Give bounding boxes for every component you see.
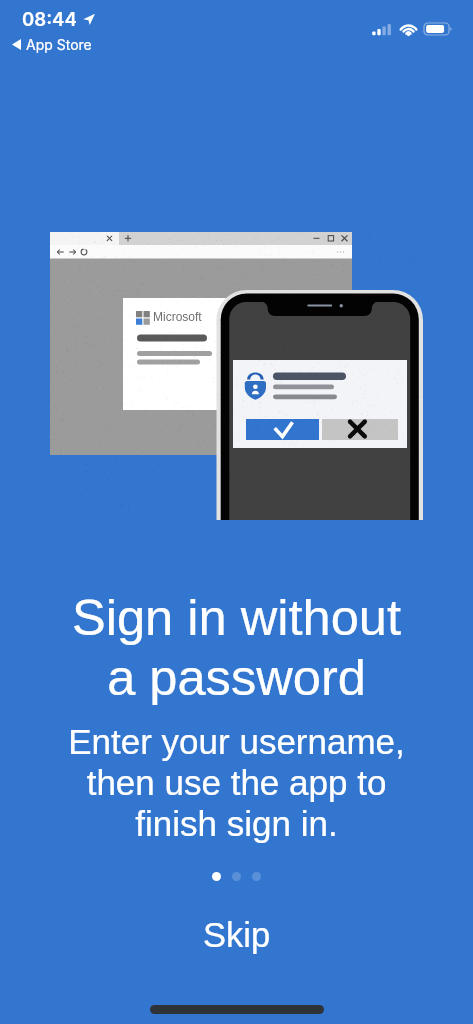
button[interactable]: Go to page 2: [232, 872, 241, 881]
staticText: Skip: [203, 916, 271, 955]
staticText: App Store: [26, 36, 92, 53]
staticText: Sign in without a password: [0, 589, 473, 705]
button[interactable]: Back to App Store: [12, 36, 96, 53]
staticText: Enter your username, then use the app to…: [0, 722, 473, 843]
staticText: 08:44: [22, 8, 77, 31]
staticText: Microsoft: [153, 310, 202, 323]
button[interactable]: Go to page 3: [252, 872, 261, 881]
button[interactable]: Skip: [163, 908, 311, 963]
button[interactable]: Go to page 1: [212, 872, 221, 881]
